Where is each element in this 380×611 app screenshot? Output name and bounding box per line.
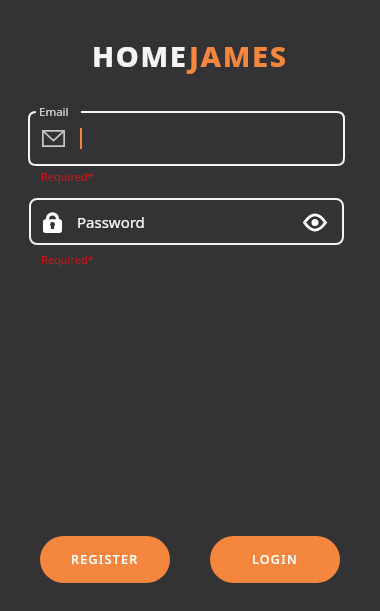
button[interactable]: Password	[29, 198, 344, 245]
staticText: REGISTER	[71, 551, 139, 568]
staticText: Password	[77, 212, 145, 232]
staticText: HOMEJAMES	[92, 36, 288, 75]
staticText: Email	[39, 104, 69, 120]
button[interactable]: LOGIN	[210, 536, 340, 583]
staticText: LOGIN	[252, 551, 298, 568]
button[interactable]: Email	[29, 105, 344, 165]
staticText: Required*	[41, 252, 94, 267]
button[interactable]: REGISTER	[40, 536, 170, 583]
button[interactable]: Show password	[300, 207, 330, 237]
staticText: Required*	[41, 169, 94, 184]
